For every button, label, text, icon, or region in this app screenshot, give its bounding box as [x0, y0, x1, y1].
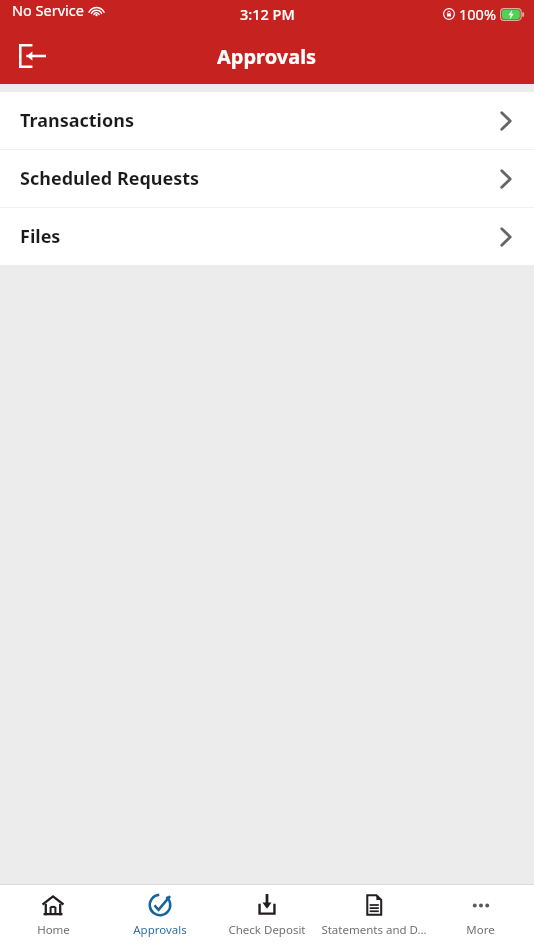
button[interactable]: Home [0, 885, 106, 950]
button[interactable]: Files [0, 208, 534, 265]
button[interactable]: Statements and D… [320, 885, 427, 950]
button[interactable]: Approvals [106, 885, 213, 950]
staticText: Home [37, 922, 70, 938]
button[interactable]: Check Deposit [213, 885, 320, 950]
staticText: Transactions [20, 108, 500, 133]
staticText: Scheduled Requests [20, 166, 500, 191]
staticText: Files [20, 224, 500, 249]
staticText: 3:12 PM [240, 4, 295, 24]
button[interactable]: Scheduled Requests [0, 150, 534, 207]
button[interactable]: Log out [8, 32, 56, 80]
staticText: No Service [12, 0, 84, 20]
button[interactable]: More [427, 885, 534, 950]
staticText: More [466, 922, 495, 938]
button[interactable]: Transactions [0, 92, 534, 149]
staticText: Approvals [217, 43, 317, 70]
staticText: Check Deposit [228, 922, 306, 938]
staticText: Approvals [133, 922, 187, 938]
staticText: 100% [459, 4, 496, 24]
staticText: Statements and D… [321, 922, 427, 938]
